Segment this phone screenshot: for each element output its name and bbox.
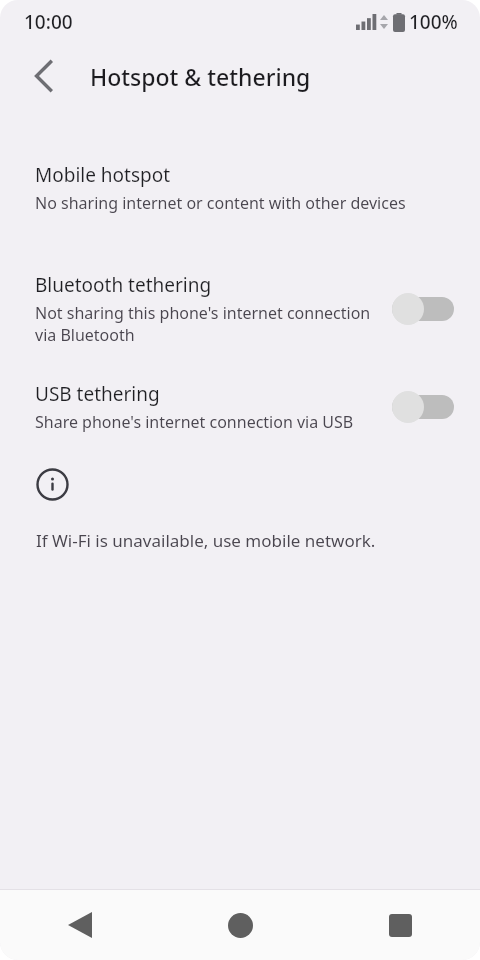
staticText: Hotspot & tethering — [90, 61, 311, 92]
button[interactable]: Back — [20, 52, 68, 100]
staticText: 10:00 — [24, 9, 73, 35]
staticText: Not sharing this phone's internet connec… — [35, 302, 378, 346]
staticText: No sharing internet or content with othe… — [35, 192, 406, 214]
button[interactable]: Toggle Bluetooth tethering — [390, 289, 456, 329]
button[interactable]: Home — [160, 890, 320, 960]
button[interactable]: Toggle USB tethering — [390, 387, 456, 427]
staticText: Bluetooth tethering — [35, 272, 212, 298]
button[interactable]: Bluetooth tethering — [0, 266, 480, 352]
staticText: If Wi-Fi is unavailable, use mobile netw… — [36, 529, 376, 552]
staticText: 100% — [409, 9, 458, 35]
button[interactable]: Mobile hotspot — [0, 156, 480, 220]
button[interactable]: Recent apps — [320, 890, 480, 960]
staticText: USB tethering — [35, 381, 160, 407]
staticText: Mobile hotspot — [35, 162, 171, 188]
button[interactable]: Back — [0, 890, 160, 960]
staticText: Share phone's internet connection via US… — [35, 411, 354, 433]
button[interactable]: USB tethering — [0, 375, 480, 439]
